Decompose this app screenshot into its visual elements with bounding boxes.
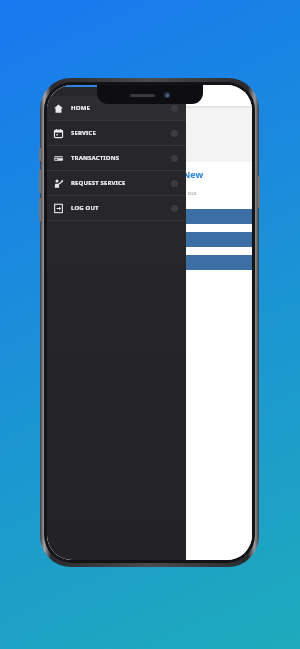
button[interactable]: Open Tasks bbox=[108, 209, 252, 224]
staticText: REQUEST SERVICE bbox=[71, 179, 126, 187]
button[interactable]: Log out bbox=[47, 196, 186, 220]
staticText: LOG OUT bbox=[71, 204, 99, 212]
other: Home bbox=[54, 104, 63, 113]
staticText: Welcome, cus bbox=[161, 189, 197, 196]
staticText: Open Tasks bbox=[125, 213, 159, 221]
other: Request service bbox=[54, 179, 63, 188]
staticText: HOME bbox=[71, 104, 90, 112]
button[interactable]: Pending Quotes bbox=[108, 255, 252, 270]
staticText: New bbox=[183, 168, 204, 180]
staticText: SERVICE bbox=[71, 129, 97, 137]
button[interactable]: Home bbox=[47, 96, 186, 120]
button[interactable]: Transactions bbox=[47, 146, 186, 170]
button[interactable]: Recent Invoices bbox=[108, 232, 252, 247]
button[interactable]: Request service bbox=[47, 171, 186, 195]
other: Service bbox=[54, 129, 63, 138]
button[interactable]: Service bbox=[47, 121, 186, 145]
other: Log out bbox=[54, 204, 63, 213]
staticText: TRANSACTIONS bbox=[71, 154, 120, 162]
other: Transactions bbox=[54, 154, 63, 163]
